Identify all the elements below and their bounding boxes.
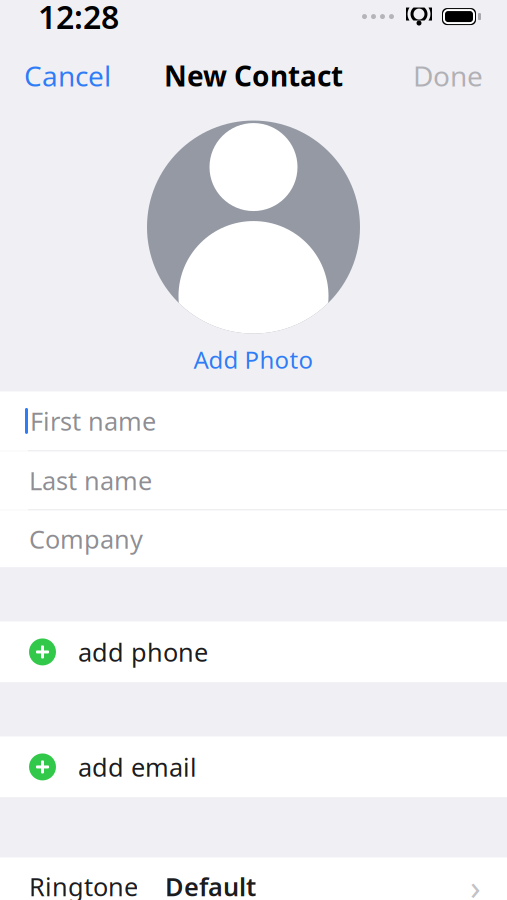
button[interactable]: Last name xyxy=(0,451,507,509)
staticText: Last name xyxy=(29,464,152,497)
staticText: Add Photo xyxy=(193,344,313,375)
button[interactable]: First name xyxy=(0,391,507,450)
staticText: Done xyxy=(413,57,483,94)
button[interactable]: add phone xyxy=(0,621,507,682)
button[interactable]: Done xyxy=(401,47,495,104)
staticText: Default xyxy=(165,870,256,900)
staticText: First name xyxy=(30,404,156,438)
button[interactable]: Ringtone xyxy=(0,857,507,900)
button[interactable]: Company xyxy=(0,510,507,567)
staticText: Cancel xyxy=(24,57,111,94)
button[interactable]: add email xyxy=(0,736,507,797)
staticText: Company xyxy=(29,522,143,556)
staticText: New Contact xyxy=(164,57,343,94)
button[interactable]: Add Photo xyxy=(147,103,360,391)
staticText: › xyxy=(470,863,481,900)
staticText: 12:28 xyxy=(38,0,119,38)
button[interactable]: Cancel xyxy=(12,47,123,104)
staticText: add email xyxy=(78,750,197,784)
staticText: add phone xyxy=(78,635,208,669)
staticText: Ringtone xyxy=(29,870,138,900)
